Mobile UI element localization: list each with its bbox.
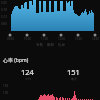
staticText: 10:00 <box>24 37 31 41</box>
staticText: 151 <box>67 67 80 77</box>
staticText: 11:00 <box>41 37 48 41</box>
staticText: 最大 <box>71 77 77 81</box>
staticText: 0:06 <box>1 22 7 26</box>
staticText: 09:00 <box>7 37 14 41</box>
staticText: 0:12 <box>1 15 7 19</box>
staticText: 124 <box>21 67 34 77</box>
staticText: 0:25 <box>1 1 7 5</box>
staticText: 有氧 <box>36 43 43 47</box>
staticText: 心率 (bpm) <box>3 57 29 64</box>
staticText: 150 <box>3 84 9 88</box>
staticText: 0:18 <box>1 8 7 12</box>
staticText: 14:00 <box>92 37 99 41</box>
staticText: 13:00 <box>75 37 82 41</box>
staticText: 平均 <box>25 77 31 81</box>
staticText: 100 <box>3 91 9 95</box>
staticText: 燃脂 <box>47 43 54 47</box>
staticText: 热身 <box>58 43 65 47</box>
staticText: 12:00 <box>58 37 65 41</box>
